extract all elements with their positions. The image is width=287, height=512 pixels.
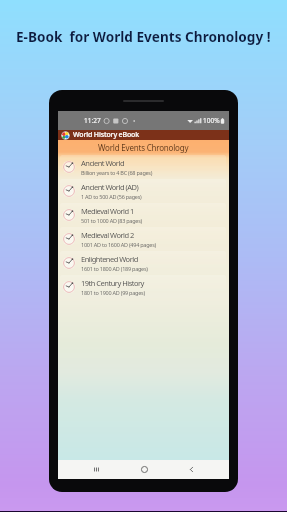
staticText: 1 AD to 500 AD (56 pages) <box>81 193 142 200</box>
button[interactable]: Home <box>127 460 161 479</box>
staticText: 1801 to 1900 AD (99 pages) <box>81 289 145 296</box>
button[interactable]: World History eBook <box>58 130 229 140</box>
staticText: Enlightened World <box>81 254 138 264</box>
staticText: Ancient World <box>81 158 124 168</box>
staticText: Medieval World 1 <box>81 206 134 216</box>
staticText: World Events Chronology <box>98 142 189 153</box>
button[interactable]: Ancient World (AD) <box>60 179 226 202</box>
button[interactable]: Enlightened World <box>60 251 226 274</box>
staticText: E-Book for World Events Chronology ! <box>16 27 271 46</box>
button[interactable]: Ancient World <box>60 155 226 178</box>
button[interactable]: Recents <box>79 460 113 479</box>
staticText: 501 to 1000 AD (83 pages) <box>81 217 142 224</box>
staticText: 11:27 <box>84 116 101 125</box>
staticText: World History eBook <box>73 130 139 140</box>
button[interactable]: 19th Century History <box>60 275 226 298</box>
staticText: Billion years to 4 BC (68 pages) <box>81 169 153 176</box>
button[interactable]: Medieval World 1 <box>60 203 226 226</box>
staticText: 1001 AD to 1600 AD (494 pages) <box>81 241 156 248</box>
staticText: 19th Century History <box>81 278 144 288</box>
staticText: 100% <box>203 116 220 125</box>
button[interactable]: Medieval World 2 <box>60 227 226 250</box>
staticText: Ancient World (AD) <box>81 182 139 192</box>
staticText: Medieval World 2 <box>81 230 134 240</box>
button[interactable]: Back <box>174 460 208 479</box>
staticText: 1601 to 1800 AD (189 pages) <box>81 265 148 272</box>
